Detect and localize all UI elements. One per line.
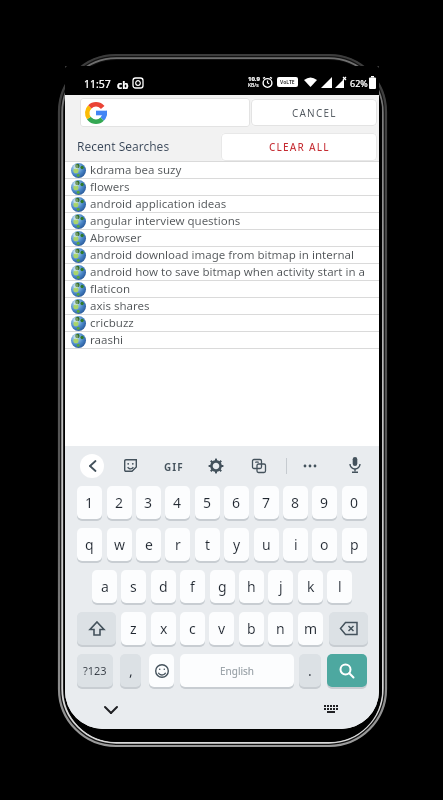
staticText: axis shares — [90, 298, 150, 314]
staticText: k — [307, 577, 315, 596]
button[interactable]: x — [151, 612, 176, 645]
button[interactable]: flaticon — [65, 281, 379, 297]
staticText: ?123 — [83, 663, 107, 678]
button[interactable] — [324, 705, 338, 716]
button[interactable]: g — [210, 570, 235, 603]
staticText: y — [233, 535, 241, 554]
button[interactable] — [252, 459, 266, 473]
button[interactable]: 3 — [136, 486, 161, 519]
button[interactable]: n — [268, 612, 293, 645]
staticText: . — [308, 661, 312, 680]
button[interactable]: l — [327, 570, 352, 603]
button[interactable]: v — [209, 612, 234, 645]
staticText: Recent Searches — [77, 138, 170, 154]
button[interactable]: 5 — [195, 486, 220, 519]
staticText: w — [114, 535, 126, 554]
button[interactable]: android download image from bitmap in in… — [65, 247, 379, 263]
staticText: l — [338, 577, 342, 596]
button[interactable] — [349, 457, 361, 474]
staticText: raashi — [90, 332, 124, 348]
staticText: 7 — [262, 493, 271, 512]
staticText: VoLTE — [280, 79, 295, 86]
staticText: b — [247, 619, 256, 638]
button[interactable]: 7 — [254, 486, 279, 519]
button[interactable]: f — [180, 570, 205, 603]
staticText: j — [279, 577, 283, 596]
button[interactable]: 0 — [342, 486, 367, 519]
staticText: e — [145, 535, 153, 554]
button[interactable]: r — [165, 528, 190, 561]
button[interactable]: android how to save bitmap when activity… — [65, 264, 379, 280]
button[interactable]: p — [342, 528, 367, 561]
staticText: , — [129, 661, 133, 680]
button[interactable] — [124, 459, 138, 473]
staticText: 62% — [350, 77, 368, 89]
staticText: d — [159, 577, 168, 596]
button[interactable]: k — [298, 570, 323, 603]
button[interactable]: 6 — [224, 486, 249, 519]
button[interactable] — [303, 464, 317, 468]
button[interactable]: 2 — [107, 486, 132, 519]
button[interactable]: a — [92, 570, 117, 603]
staticText: 9 — [320, 493, 329, 512]
button[interactable]: 1 — [77, 486, 102, 519]
staticText: q — [85, 535, 94, 554]
button[interactable] — [149, 654, 174, 687]
staticText: x — [160, 619, 168, 638]
button[interactable]: d — [151, 570, 176, 603]
button[interactable]: c — [180, 612, 205, 645]
button[interactable] — [80, 454, 104, 478]
button[interactable]: y — [224, 528, 249, 561]
staticText: o — [320, 535, 329, 554]
staticText: angular interview questions — [90, 213, 241, 229]
button[interactable]: i — [283, 528, 308, 561]
button[interactable] — [80, 98, 250, 127]
staticText: 10.9 — [248, 75, 260, 83]
button[interactable]: h — [239, 570, 264, 603]
staticText: v — [218, 619, 226, 638]
button[interactable]: j — [268, 570, 293, 603]
button[interactable]: angular interview questions — [65, 213, 379, 229]
button[interactable]: 8 — [283, 486, 308, 519]
button[interactable]: Abrowser — [65, 230, 379, 246]
button[interactable]: English — [180, 654, 294, 687]
button[interactable]: w — [107, 528, 132, 561]
button[interactable]: q — [77, 528, 102, 561]
button[interactable]: u — [254, 528, 279, 561]
button[interactable]: b — [239, 612, 264, 645]
button[interactable]: z — [121, 612, 146, 645]
button[interactable] — [104, 706, 118, 714]
button[interactable]: GIF — [164, 460, 184, 474]
button[interactable]: , — [120, 654, 141, 687]
staticText: f — [190, 577, 195, 596]
button[interactable]: CLEAR ALL — [221, 133, 377, 161]
staticText: Abrowser — [90, 230, 142, 246]
button[interactable] — [327, 654, 367, 687]
button[interactable]: flowers — [65, 179, 379, 195]
staticText: cb — [117, 78, 129, 92]
button[interactable]: s — [121, 570, 146, 603]
button[interactable]: 4 — [165, 486, 190, 519]
button[interactable]: 9 — [312, 486, 337, 519]
button[interactable]: android application ideas — [65, 196, 379, 212]
staticText: 4 — [173, 493, 182, 512]
button[interactable]: m — [298, 612, 323, 645]
button[interactable]: cricbuzz — [65, 315, 379, 331]
button[interactable]: raashi — [65, 332, 379, 348]
button[interactable]: . — [299, 654, 321, 687]
staticText: 3 — [144, 493, 153, 512]
button[interactable]: t — [195, 528, 220, 561]
button[interactable]: e — [136, 528, 161, 561]
staticText: s — [130, 577, 137, 596]
button[interactable]: o — [312, 528, 337, 561]
button[interactable]: axis shares — [65, 298, 379, 314]
button[interactable]: CANCEL — [251, 99, 377, 126]
button[interactable] — [209, 459, 223, 473]
button[interactable]: ?123 — [77, 654, 113, 687]
button[interactable] — [77, 612, 116, 645]
staticText: h — [247, 577, 256, 596]
staticText: 2 — [115, 493, 124, 512]
button[interactable]: kdrama bea suzy — [65, 162, 379, 178]
staticText: KB/s — [248, 82, 259, 89]
button[interactable] — [329, 612, 368, 645]
